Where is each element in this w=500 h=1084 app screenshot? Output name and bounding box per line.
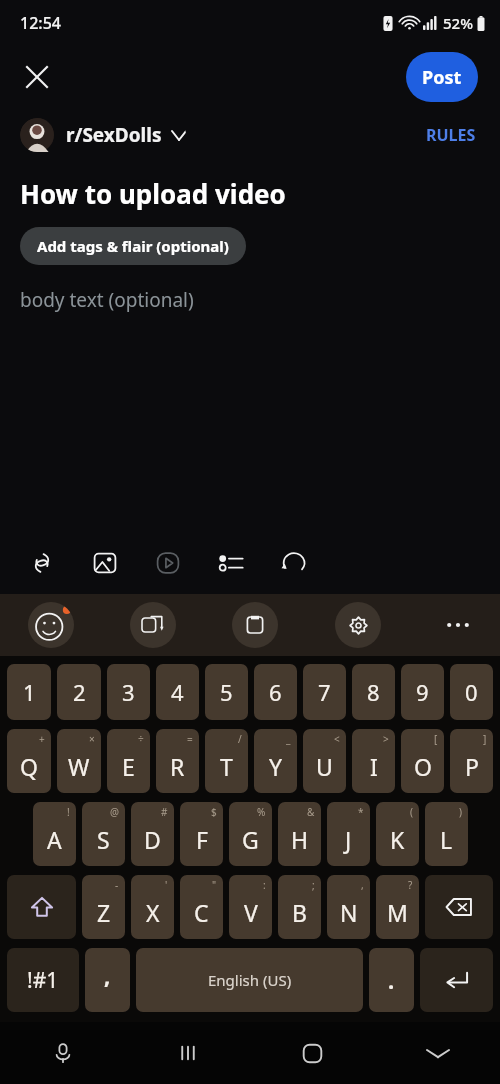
button[interactable]: (	[376, 802, 419, 866]
button[interactable]: 3	[107, 664, 150, 720]
button[interactable]: Add video	[152, 547, 184, 579]
button[interactable]: >	[352, 729, 395, 793]
button[interactable]: 7	[303, 664, 346, 720]
button[interactable]: .	[369, 948, 414, 1012]
button[interactable]: Add image	[89, 547, 121, 579]
button[interactable]: Space	[136, 948, 363, 1012]
staticText: 0	[465, 677, 478, 707]
button[interactable]: 4	[156, 664, 199, 720]
staticText: R	[170, 751, 185, 782]
button[interactable]: +	[7, 729, 51, 793]
button[interactable]: ÷	[107, 729, 150, 793]
staticText: 5	[220, 677, 233, 707]
staticText: )	[459, 805, 462, 819]
button[interactable]: ?	[376, 875, 419, 939]
button[interactable]: More options	[438, 605, 478, 645]
button[interactable]: ]	[450, 729, 493, 793]
staticText: E	[122, 751, 135, 782]
button[interactable]: !	[33, 802, 76, 866]
staticText: #	[161, 805, 168, 819]
button[interactable]: r/SexDolls	[20, 118, 186, 152]
button[interactable]: Add tags & flair (optional)	[20, 227, 246, 265]
staticText: RULES	[426, 124, 476, 146]
staticText: Post	[422, 65, 462, 90]
staticText: 3	[122, 677, 135, 707]
button[interactable]: @	[82, 802, 125, 866]
staticText: ×	[89, 732, 95, 746]
staticText: ÷	[138, 732, 144, 746]
staticText: X	[146, 897, 160, 928]
button[interactable]: Start AMA	[278, 547, 310, 579]
button[interactable]: Add poll	[215, 547, 247, 579]
button[interactable]: "	[180, 875, 223, 939]
button[interactable]: Backspace	[425, 875, 493, 939]
staticText: B	[292, 897, 307, 928]
button[interactable]: Add link	[26, 547, 58, 579]
button[interactable]: 8	[352, 664, 395, 720]
staticText: Z	[97, 897, 111, 928]
button[interactable]: <	[303, 729, 346, 793]
button[interactable]: !#1	[7, 948, 79, 1012]
staticText: @	[110, 805, 119, 819]
staticText: *	[358, 805, 364, 819]
staticText: +	[39, 732, 45, 746]
staticText: J	[345, 824, 352, 855]
button[interactable]: Keyboard settings	[335, 602, 381, 648]
button[interactable]: -	[82, 875, 125, 939]
button[interactable]: )	[425, 802, 468, 866]
staticText: <	[334, 732, 340, 746]
button[interactable]: Clipboard	[232, 602, 278, 648]
button[interactable]: :	[229, 875, 272, 939]
staticText: >	[383, 732, 389, 746]
button[interactable]: &	[278, 802, 321, 866]
button[interactable]: Close	[14, 54, 60, 100]
button[interactable]: ,	[327, 875, 370, 939]
button[interactable]: Voice input	[0, 1022, 125, 1084]
button[interactable]: '	[131, 875, 174, 939]
staticText: "	[212, 878, 217, 892]
button[interactable]: Recent apps	[125, 1022, 250, 1084]
staticText: ]	[483, 732, 487, 746]
button[interactable]: 2	[57, 664, 101, 720]
button[interactable]: 0	[450, 664, 493, 720]
button[interactable]: $	[180, 802, 223, 866]
button[interactable]: Enter	[420, 948, 493, 1012]
button[interactable]: /	[205, 729, 248, 793]
button[interactable]: Home	[250, 1022, 375, 1084]
button[interactable]: 6	[254, 664, 297, 720]
button[interactable]: 1	[7, 664, 51, 720]
button[interactable]: #	[131, 802, 174, 866]
button[interactable]: Shift	[7, 875, 76, 939]
button[interactable]: ×	[57, 729, 101, 793]
staticText: H	[291, 824, 309, 855]
button[interactable]: RULES	[422, 120, 480, 150]
button[interactable]: ,	[85, 948, 130, 1012]
staticText: L	[440, 824, 453, 855]
button[interactable]: *	[327, 802, 370, 866]
staticText: English (US)	[208, 970, 292, 990]
staticText: A	[47, 824, 62, 855]
button[interactable]: =	[156, 729, 199, 793]
button[interactable]: %	[229, 802, 272, 866]
staticText: /	[238, 732, 242, 746]
staticText: V	[244, 897, 258, 928]
button[interactable]: [	[401, 729, 444, 793]
staticText: 6	[269, 677, 282, 707]
staticText: &	[307, 805, 315, 819]
button[interactable]: Emoji	[28, 602, 74, 648]
staticText: T	[220, 751, 233, 782]
staticText: _	[286, 732, 291, 746]
staticText: M	[387, 897, 408, 928]
staticText: -	[115, 878, 119, 892]
button[interactable]: ;	[278, 875, 321, 939]
button[interactable]: 9	[401, 664, 444, 720]
button[interactable]: Hide keyboard	[375, 1022, 500, 1084]
button[interactable]: Translate	[130, 602, 176, 648]
staticText: body text (optional)	[20, 287, 194, 313]
button[interactable]: _	[254, 729, 297, 793]
staticText: ,	[104, 960, 111, 990]
button[interactable]: Post	[406, 52, 478, 102]
staticText: !#1	[27, 966, 59, 995]
staticText: K	[390, 824, 405, 855]
button[interactable]: 5	[205, 664, 248, 720]
